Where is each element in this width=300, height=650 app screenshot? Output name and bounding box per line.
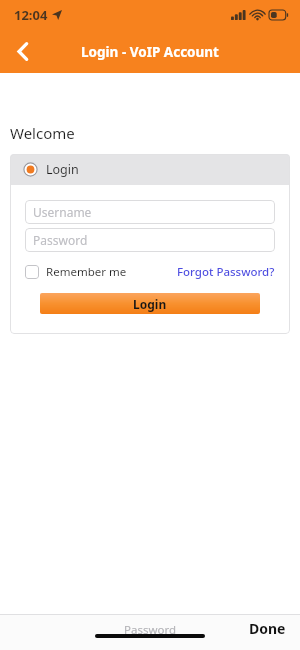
staticText: Done <box>249 619 286 638</box>
staticText: Username <box>33 204 92 220</box>
button[interactable]: Username <box>25 200 275 224</box>
button[interactable]: Remember me <box>25 264 127 280</box>
staticText: Forgot Password? <box>177 264 275 280</box>
staticText: 12:04 <box>14 6 48 24</box>
staticText: Login <box>133 296 167 312</box>
button[interactable]: Forgot Password? <box>177 264 275 280</box>
staticText: Remember me <box>46 264 127 280</box>
button[interactable]: Done <box>249 615 300 638</box>
staticText: Password <box>33 232 88 248</box>
button[interactable]: Login <box>10 154 290 185</box>
button[interactable]: Back <box>0 30 44 73</box>
button[interactable]: Login <box>40 293 260 314</box>
staticText: Password <box>124 622 177 638</box>
button[interactable]: Password <box>25 228 275 252</box>
staticText: Login - VoIP Account <box>81 43 219 61</box>
staticText: Welcome <box>10 123 75 143</box>
staticText: Login <box>46 161 79 178</box>
